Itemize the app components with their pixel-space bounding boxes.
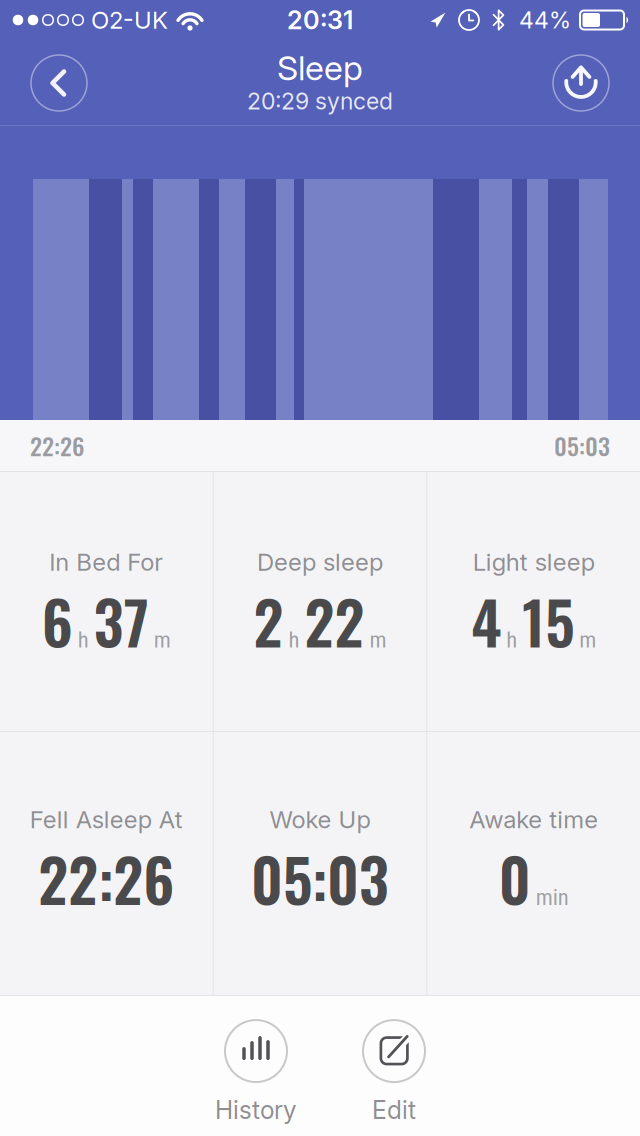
button[interactable]: Edit	[363, 1020, 425, 1125]
staticText: 2	[253, 577, 283, 664]
staticText: Awake time	[469, 805, 598, 834]
staticText: 05:03	[554, 428, 610, 463]
staticText: h	[506, 626, 517, 653]
staticText: 20:31	[287, 5, 353, 35]
staticText: 22:26	[38, 835, 174, 922]
staticText: m	[154, 626, 171, 653]
staticText: 37	[94, 577, 149, 664]
button[interactable]: Back	[31, 55, 87, 111]
button[interactable]: Share	[553, 55, 609, 111]
button[interactable]: History	[215, 1020, 297, 1125]
staticText: 22	[304, 577, 364, 664]
staticText: History	[215, 1095, 297, 1125]
staticText: Fell Asleep At	[30, 805, 183, 834]
staticText: Edit	[372, 1095, 416, 1125]
staticText: 05:03	[251, 835, 389, 922]
staticText: O2-UK	[91, 5, 168, 34]
staticText: Deep sleep	[257, 547, 383, 576]
staticText: 0	[499, 835, 531, 922]
staticText: Woke Up	[269, 805, 370, 834]
staticText: m	[369, 626, 386, 653]
staticText: Light sleep	[473, 547, 595, 576]
staticText: h	[288, 626, 299, 653]
staticText: 15	[522, 577, 574, 664]
staticText: 44%	[519, 6, 571, 34]
staticText: 4	[471, 577, 501, 664]
staticText: h	[78, 626, 89, 653]
staticText: 20:29 synced	[247, 87, 393, 115]
staticText: m	[579, 626, 596, 653]
staticText: 22:26	[30, 428, 85, 463]
staticText: Sleep	[277, 47, 363, 88]
staticText: min	[536, 884, 569, 911]
staticText: In Bed For	[49, 547, 163, 576]
staticText: 6	[42, 577, 73, 664]
